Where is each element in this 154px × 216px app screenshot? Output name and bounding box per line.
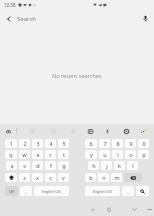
staticText: x bbox=[36, 174, 39, 181]
staticText: 1 bbox=[9, 140, 13, 147]
staticText: c bbox=[49, 174, 52, 181]
button[interactable]: t bbox=[58, 150, 69, 159]
staticText: i bbox=[117, 151, 119, 158]
button[interactable]: f bbox=[45, 161, 56, 170]
staticText: l bbox=[132, 162, 134, 169]
button[interactable]: Backspace bbox=[124, 173, 142, 182]
staticText: w bbox=[22, 151, 27, 158]
staticText: y bbox=[90, 151, 93, 158]
staticText: 5 bbox=[62, 140, 66, 147]
staticText: o bbox=[129, 151, 133, 158]
button[interactable]: y bbox=[85, 150, 97, 159]
button[interactable]: g bbox=[58, 161, 69, 170]
button[interactable]: Voice input bbox=[102, 126, 113, 137]
button[interactable]: h bbox=[88, 161, 99, 170]
button[interactable]: 0 bbox=[138, 139, 149, 148]
button[interactable]: 2 bbox=[19, 139, 30, 148]
button[interactable]: w bbox=[19, 150, 30, 159]
button[interactable]: u bbox=[99, 150, 110, 159]
staticText: r bbox=[49, 151, 52, 158]
button[interactable]: Hide keyboard bbox=[129, 204, 140, 215]
staticText: English (US) bbox=[42, 189, 61, 194]
button[interactable]: 8 bbox=[112, 139, 123, 148]
staticText: Search bbox=[17, 15, 36, 23]
button[interactable]: 5 bbox=[58, 139, 69, 148]
button[interactable]: a bbox=[6, 161, 17, 170]
button[interactable]: b bbox=[85, 173, 96, 182]
button[interactable]: i bbox=[112, 150, 123, 159]
button[interactable]: v bbox=[58, 173, 69, 182]
staticText: a bbox=[10, 162, 14, 169]
staticText: t bbox=[63, 151, 65, 158]
staticText: p bbox=[142, 151, 146, 158]
staticText: u bbox=[103, 151, 107, 158]
button[interactable]: Keyboard layout bbox=[144, 204, 154, 215]
staticText: 4 bbox=[49, 140, 53, 147]
button[interactable]: 7 bbox=[99, 139, 110, 148]
staticText: v bbox=[62, 174, 65, 181]
button[interactable]: c bbox=[45, 173, 56, 182]
button[interactable]: . bbox=[122, 186, 134, 196]
button[interactable]: Back bbox=[0, 10, 17, 27]
button[interactable]: Search bbox=[17, 10, 137, 27]
button[interactable]: 9 bbox=[125, 139, 136, 148]
button[interactable]: Voice search bbox=[137, 10, 154, 27]
staticText: 9 bbox=[129, 140, 133, 147]
button[interactable]: n bbox=[98, 173, 109, 182]
button[interactable]: English (US) bbox=[85, 186, 120, 196]
staticText: n bbox=[102, 174, 106, 181]
staticText: k bbox=[118, 162, 121, 169]
staticText: 7 bbox=[103, 140, 107, 147]
staticText: English (US) bbox=[93, 189, 112, 194]
staticText: b bbox=[89, 174, 93, 181]
button[interactable]: 4 bbox=[45, 139, 56, 148]
button[interactable]: j bbox=[101, 161, 112, 170]
staticText: z bbox=[23, 174, 26, 181]
button[interactable]: x bbox=[32, 173, 43, 182]
button[interactable]: q bbox=[5, 150, 17, 159]
button[interactable]: English (US) bbox=[34, 186, 69, 196]
button[interactable]: 3 bbox=[32, 139, 43, 148]
staticText: d bbox=[36, 162, 40, 169]
button[interactable]: k bbox=[114, 161, 125, 170]
button[interactable]: z bbox=[19, 173, 30, 182]
button[interactable]: 6 bbox=[85, 139, 97, 148]
button[interactable]: l bbox=[127, 161, 138, 170]
staticText: 8 bbox=[116, 140, 120, 147]
button[interactable]: Settings bbox=[121, 126, 132, 137]
staticText: 12:38 bbox=[4, 2, 16, 8]
staticText: 0 bbox=[142, 140, 146, 147]
staticText: j bbox=[106, 162, 108, 169]
button[interactable]: Shift bbox=[5, 173, 17, 182]
staticText: 2 bbox=[23, 140, 27, 147]
staticText: g bbox=[62, 162, 66, 169]
staticText: m bbox=[114, 174, 120, 181]
button[interactable]: Search bbox=[136, 186, 149, 196]
staticText: q bbox=[9, 151, 13, 158]
staticText: h bbox=[92, 162, 96, 169]
staticText: No recent searches bbox=[52, 72, 102, 79]
staticText: !#1 bbox=[9, 189, 15, 194]
staticText: e bbox=[36, 151, 40, 158]
button[interactable]: !#1 bbox=[5, 186, 18, 196]
button[interactable]: p bbox=[138, 150, 149, 159]
staticText: , bbox=[25, 188, 27, 195]
button[interactable]: r bbox=[45, 150, 56, 159]
staticText: f bbox=[50, 162, 52, 169]
button[interactable]: , bbox=[20, 186, 32, 196]
staticText: 3 bbox=[36, 140, 40, 147]
button[interactable]: Recents bbox=[87, 204, 98, 215]
button[interactable]: s bbox=[19, 161, 30, 170]
button[interactable]: Stickers bbox=[85, 126, 96, 137]
staticText: s bbox=[23, 162, 26, 169]
button[interactable]: Home bbox=[103, 204, 114, 215]
button[interactable]: 1 bbox=[5, 139, 17, 148]
button[interactable]: d bbox=[32, 161, 43, 170]
staticText: 6 bbox=[89, 140, 93, 147]
button[interactable]: Incognito bbox=[3, 126, 14, 137]
button[interactable]: More options bbox=[138, 126, 149, 137]
button[interactable]: e bbox=[32, 150, 43, 159]
button[interactable]: o bbox=[125, 150, 136, 159]
button[interactable]: m bbox=[111, 173, 122, 182]
staticText: . bbox=[127, 188, 129, 195]
